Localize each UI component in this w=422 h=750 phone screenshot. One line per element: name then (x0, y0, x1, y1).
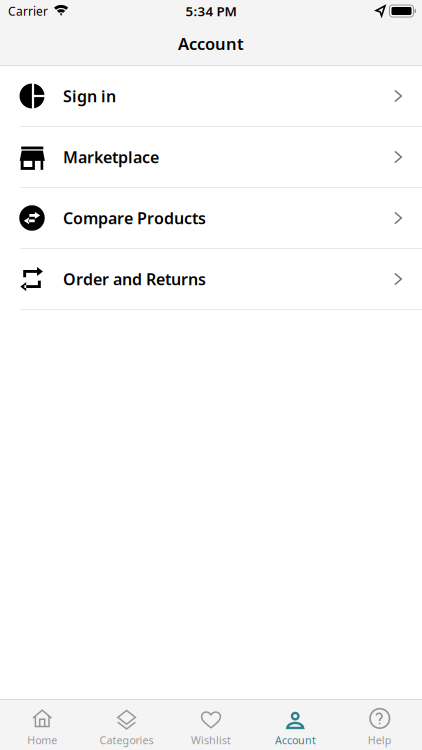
staticText: Categories (100, 733, 154, 747)
button[interactable]: Compare Products (0, 188, 422, 249)
staticText: Carrier (8, 3, 48, 19)
button[interactable]: Marketplace (0, 127, 422, 188)
staticText: Order and Returns (63, 268, 206, 290)
staticText: Marketplace (63, 146, 159, 168)
button[interactable]: Home (0, 699, 84, 750)
staticText: Account (275, 733, 316, 747)
staticText: Sign in (63, 85, 116, 107)
staticText: Home (27, 733, 57, 747)
staticText: Wishlist (191, 733, 231, 747)
button[interactable]: Account (253, 699, 338, 750)
staticText: Help (368, 733, 392, 747)
staticText: 5:34 PM (185, 2, 236, 20)
button[interactable]: Sign in (0, 66, 422, 127)
button[interactable]: Wishlist (169, 699, 253, 750)
button[interactable]: Help (338, 699, 422, 750)
staticText: Account (178, 32, 244, 55)
staticText: Compare Products (63, 207, 206, 229)
button[interactable]: Categories (84, 699, 169, 750)
button[interactable]: Order and Returns (0, 249, 422, 310)
